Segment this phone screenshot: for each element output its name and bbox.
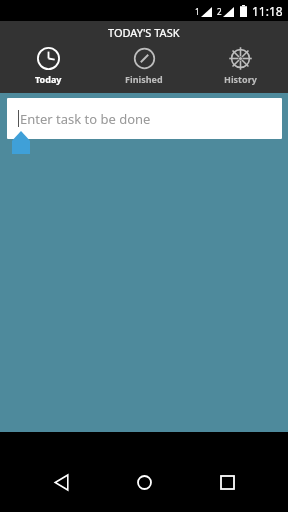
button[interactable]: Finished xyxy=(96,43,192,93)
staticText: Today xyxy=(35,73,62,85)
button[interactable]: Recent apps xyxy=(205,460,249,504)
staticText: 2 xyxy=(217,6,222,17)
staticText: TODAY'S TASK xyxy=(108,25,180,40)
staticText: 11:18 xyxy=(252,3,283,19)
staticText: Finished xyxy=(125,73,163,85)
button[interactable]: Home xyxy=(122,460,166,504)
button[interactable]: Today xyxy=(0,43,96,93)
staticText: Enter task to be done xyxy=(20,110,151,128)
staticText: History xyxy=(224,73,257,85)
button[interactable]: History xyxy=(192,43,288,93)
button[interactable]: Back xyxy=(39,460,83,504)
staticText: 1 xyxy=(195,6,200,17)
button[interactable]: Enter task to be done xyxy=(7,98,282,139)
